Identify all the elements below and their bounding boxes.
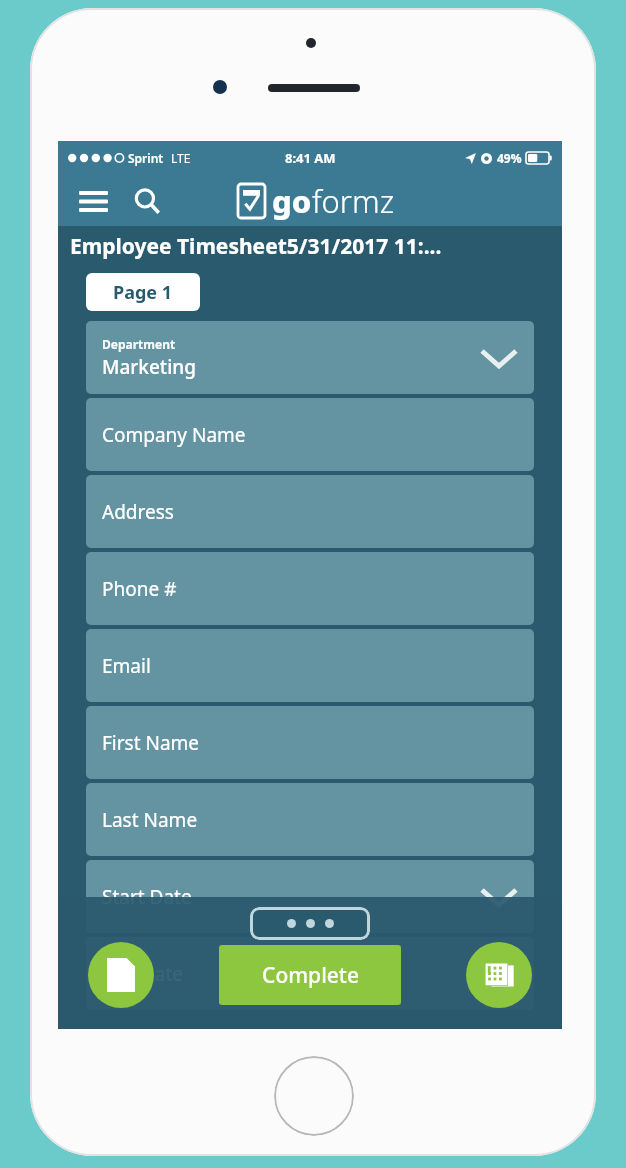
button[interactable]: Pages <box>466 942 532 1008</box>
button[interactable]: Menu <box>72 180 114 222</box>
staticText: 49% <box>497 150 522 166</box>
button[interactable]: New form <box>88 942 154 1008</box>
button[interactable]: End Date <box>86 937 534 1010</box>
button[interactable]: Company Name <box>86 398 534 471</box>
staticText: Department <box>102 336 176 352</box>
staticText: LTE <box>171 150 191 166</box>
button[interactable]: Address <box>86 475 534 548</box>
staticText: Last Name <box>102 807 198 833</box>
button[interactable]: Department <box>86 321 534 394</box>
staticText: End Date <box>102 961 184 987</box>
button[interactable]: Last Name <box>86 783 534 856</box>
button[interactable]: Complete <box>219 945 401 1005</box>
button[interactable]: First Name <box>86 706 534 779</box>
staticText: Sprint <box>128 150 164 166</box>
staticText: Phone # <box>102 576 177 602</box>
button[interactable]: Search <box>126 180 168 222</box>
staticText: Company Name <box>102 422 246 448</box>
staticText: go <box>272 180 312 222</box>
staticText: Employee Timesheet5/31/2017 11:... <box>70 232 442 261</box>
button[interactable]: Phone # <box>86 552 534 625</box>
staticText: 8:41 AM <box>285 149 336 167</box>
staticText: Start Date <box>102 884 192 910</box>
staticText: Page 1 <box>113 280 173 305</box>
button[interactable]: Start Date <box>86 860 534 933</box>
staticText: First Name <box>102 730 200 756</box>
staticText: formz <box>312 180 395 222</box>
button[interactable]: Page options <box>250 907 370 940</box>
button[interactable]: Email <box>86 629 534 702</box>
staticText: Address <box>102 499 174 525</box>
button[interactable]: Page 1 <box>86 273 200 311</box>
staticText: Email <box>102 653 151 679</box>
staticText: Complete <box>262 961 359 990</box>
staticText: Marketing <box>102 354 196 380</box>
